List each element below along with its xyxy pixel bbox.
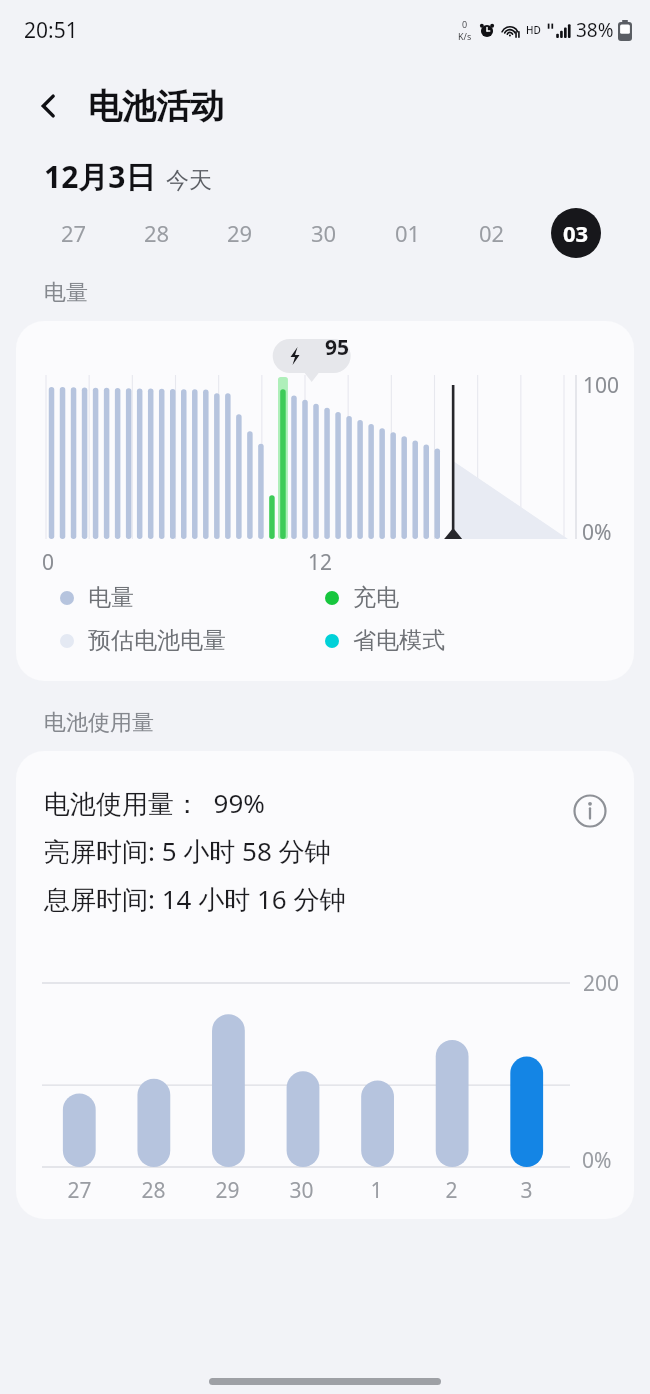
staticText: 今天 [166, 166, 212, 195]
staticText: K/s [458, 30, 472, 42]
button[interactable]: 省电模式 [325, 626, 445, 655]
staticText: 30 [289, 1176, 314, 1205]
staticText: 29 [227, 218, 253, 248]
staticText: 0% [582, 1146, 612, 1175]
button[interactable]: 30 [282, 197, 366, 269]
staticText: 0 [42, 548, 55, 577]
button[interactable]: 27 [32, 197, 115, 269]
button[interactable]: 28 [115, 197, 198, 269]
staticText: 省电模式 [353, 626, 445, 655]
button[interactable]: Back [22, 79, 76, 133]
staticText: 2 [445, 1176, 458, 1205]
staticText: 20:51 [24, 16, 78, 45]
staticText: 亮屏时间: 5 小时 58 分钟 [44, 833, 331, 869]
staticText: 息屏时间: 14 小时 16 分钟 [44, 881, 346, 917]
staticText: 28 [144, 218, 170, 248]
staticText: 12月3日 [44, 156, 156, 197]
staticText: 01 [395, 218, 421, 248]
staticText: 3 [520, 1176, 533, 1205]
staticText: 电池使用量： 99% [44, 785, 265, 821]
staticText: 电池使用量 [44, 709, 154, 737]
button[interactable]: 01 [366, 197, 450, 269]
staticText: 12 [308, 548, 333, 577]
button[interactable]: 29 [198, 197, 282, 269]
staticText: 电量 [88, 583, 134, 612]
staticText: 预估电池电量 [88, 626, 226, 655]
staticText: 03 [563, 218, 589, 248]
staticText: 27 [67, 1176, 92, 1205]
button[interactable]: 电量 [60, 583, 325, 612]
staticText: 29 [215, 1176, 240, 1205]
staticText: 28 [141, 1176, 166, 1205]
staticText: 27 [61, 218, 87, 248]
staticText: 0 [462, 18, 468, 30]
button[interactable]: 预估电池电量 [60, 626, 325, 655]
button[interactable]: 02 [450, 197, 534, 269]
staticText: 30 [311, 218, 337, 248]
staticText: 0% [582, 518, 612, 547]
button[interactable]: 03 [534, 197, 618, 269]
staticText: 100 [583, 371, 620, 400]
staticText: 充电 [353, 583, 399, 612]
button[interactable]: 电池使用量： 99% [16, 751, 634, 1219]
staticText: 95 [325, 333, 350, 362]
button[interactable]: Info [564, 785, 616, 837]
staticText: 02 [479, 218, 505, 248]
staticText: 38% [576, 17, 614, 43]
button[interactable]: 充电 [325, 583, 399, 612]
button[interactable]: 95 [16, 321, 634, 681]
staticText: 电量 [44, 279, 88, 307]
staticText: 1 [370, 1176, 383, 1205]
staticText: 电池活动 [88, 85, 224, 128]
staticText: 200 [583, 969, 620, 998]
staticText: HD [526, 23, 541, 37]
